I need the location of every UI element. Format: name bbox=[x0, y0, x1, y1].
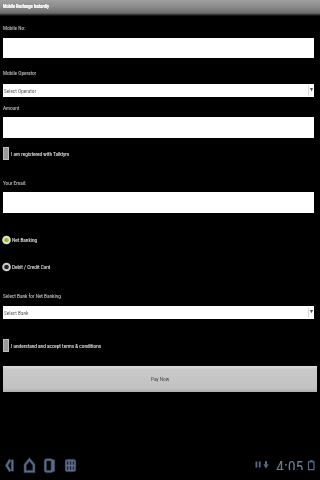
button[interactable]: I understand and accept terms & conditio… bbox=[0, 339, 320, 352]
button[interactable]: I am registered with Talktym bbox=[0, 147, 320, 160]
staticText: Debit / Credit Card bbox=[12, 264, 51, 270]
staticText: Mobile Operator bbox=[3, 70, 37, 76]
staticText: Net Banking bbox=[12, 237, 38, 243]
button[interactable]: All apps bbox=[63, 455, 78, 475]
staticText: Amount bbox=[3, 105, 20, 111]
button[interactable]: Select Bank bbox=[3, 306, 314, 319]
staticText: Your Email: bbox=[3, 180, 27, 186]
button[interactable]: Pay Now bbox=[3, 366, 317, 392]
button[interactable]: Select Operator bbox=[3, 84, 314, 97]
staticText: Mobile No: bbox=[3, 25, 26, 31]
staticText: 4:05 bbox=[276, 458, 304, 470]
button[interactable]: Net Banking bbox=[0, 234, 320, 246]
staticText: I understand and accept terms & conditio… bbox=[11, 343, 102, 349]
staticText: Pay Now bbox=[151, 376, 170, 382]
staticText: I am registered with Talktym bbox=[11, 151, 70, 157]
staticText: Select Operator bbox=[4, 88, 36, 94]
button[interactable]: Recent apps bbox=[42, 455, 57, 475]
button[interactable]: Debit / Credit Card bbox=[0, 261, 320, 273]
button[interactable]: Back bbox=[2, 455, 17, 475]
staticText: Select Bank bbox=[4, 310, 29, 316]
button[interactable]: Home bbox=[22, 455, 37, 475]
staticText: Mobile Recharge Instantly bbox=[3, 4, 49, 9]
staticText: Select Bank for Net Banking bbox=[3, 293, 61, 299]
